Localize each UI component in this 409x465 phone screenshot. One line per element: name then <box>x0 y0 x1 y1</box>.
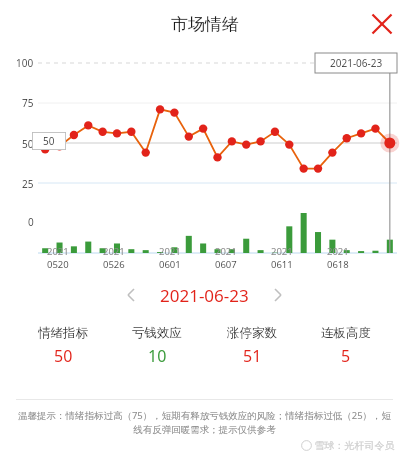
staticText: 市场情绪 <box>171 14 239 35</box>
button[interactable]: Next day <box>263 280 293 310</box>
staticText: 雪球：光杆司令员 <box>312 438 395 452</box>
staticText: 0520 <box>47 258 69 271</box>
staticText: 25 <box>22 177 34 191</box>
staticText: 5 <box>341 345 351 367</box>
staticText: 涨停家数 <box>227 325 277 341</box>
staticText: 亏钱效应 <box>132 325 182 341</box>
button[interactable]: 涨停家数 <box>221 323 283 369</box>
staticText: 2021-06-23 <box>160 284 249 307</box>
staticText: 2021 <box>327 245 349 258</box>
button[interactable]: 情绪指标 <box>32 323 94 369</box>
staticText: 0607 <box>215 258 237 271</box>
staticText: 2021-06-23 <box>330 56 383 70</box>
button[interactable]: 连板高度 <box>315 323 377 369</box>
staticText: 50 <box>43 134 55 148</box>
staticText: 0601 <box>159 258 181 271</box>
button[interactable]: Previous day <box>116 280 146 310</box>
staticText: 0618 <box>327 258 349 271</box>
staticText: 50 <box>54 345 73 367</box>
button[interactable]: 亏钱效应 <box>126 323 188 369</box>
staticText: 10 <box>148 345 167 367</box>
staticText: 50 <box>22 137 34 151</box>
staticText: 51 <box>243 345 262 367</box>
staticText: 0 <box>28 215 34 229</box>
staticText: 2021 <box>271 245 293 258</box>
staticText: 100 <box>16 56 34 70</box>
staticText: 2021 <box>103 245 125 258</box>
staticText: 温馨提示：情绪指标过高（75），短期有释放亏钱效应的风险；情绪指标过低（25），… <box>14 409 395 436</box>
staticText: 2021 <box>215 245 237 258</box>
staticText: 2021 <box>159 245 181 258</box>
staticText: 2021 <box>47 245 69 258</box>
staticText: 情绪指标 <box>38 325 88 341</box>
staticText: 75 <box>22 96 34 110</box>
button[interactable]: Close <box>365 7 399 41</box>
staticText: 连板高度 <box>321 325 371 341</box>
staticText: 0611 <box>271 258 293 271</box>
staticText: 0526 <box>103 258 125 271</box>
button[interactable]: 2021-06-23 <box>160 284 249 307</box>
